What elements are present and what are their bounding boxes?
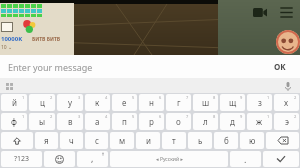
button[interactable]: ш [193, 94, 218, 111]
button[interactable]: к [85, 94, 110, 111]
staticText: ф [11, 116, 17, 127]
button[interactable]: Clipboard [3, 80, 15, 92]
staticText: ◂ Русский ▸ [156, 156, 183, 163]
button[interactable]: г [166, 94, 191, 111]
staticText: 8 [213, 114, 216, 119]
button[interactable] [263, 151, 299, 167]
staticText: я [44, 135, 49, 146]
button[interactable]: с [85, 132, 108, 149]
button[interactable]: ◂ Русский ▸ [110, 151, 228, 167]
staticText: з [258, 97, 262, 108]
button[interactable]: е [112, 94, 137, 111]
button[interactable]: Backspace [266, 132, 299, 149]
staticText: а [95, 116, 100, 127]
button[interactable]: Enter your message [0, 55, 300, 78]
staticText: к [95, 97, 100, 108]
button[interactable]: л [193, 113, 218, 130]
staticText: п [122, 116, 127, 127]
staticText: ы [39, 116, 46, 127]
button[interactable]: й [1, 94, 27, 111]
staticText: н [149, 97, 154, 108]
staticText: , [91, 152, 94, 164]
button[interactable]: з [247, 94, 272, 111]
button[interactable]: ?123 [1, 151, 42, 167]
button[interactable]: , [77, 151, 108, 167]
staticText: . [244, 153, 247, 165]
button[interactable]: в [57, 113, 83, 130]
staticText: 10 ⌄ [1, 44, 13, 51]
button[interactable]: м [110, 132, 134, 149]
staticText: м [119, 135, 126, 146]
staticText: 4 [105, 95, 108, 100]
button[interactable]: т [162, 132, 186, 149]
staticText: 6 [159, 95, 162, 100]
button[interactable]: о [166, 113, 191, 130]
staticText: г [177, 97, 181, 108]
staticText: 5 [132, 114, 135, 119]
button[interactable] [1, 22, 13, 32]
button[interactable]: Video [251, 5, 269, 19]
staticText: 2 [294, 114, 297, 119]
staticText: ю [249, 135, 256, 146]
staticText: 2 [50, 95, 53, 100]
button[interactable]: р [139, 113, 164, 130]
staticText: 1 [267, 114, 270, 119]
button[interactable]: у [57, 94, 83, 111]
staticText: ж [256, 116, 263, 127]
staticText: 8 [213, 95, 216, 100]
staticText: 1 [22, 114, 25, 119]
button[interactable]: п [112, 113, 137, 130]
staticText: х [284, 97, 289, 108]
staticText: 10000K [1, 35, 23, 43]
staticText: ш [202, 97, 210, 108]
staticText: о [176, 116, 181, 127]
staticText: и [146, 135, 151, 146]
staticText: ч [69, 135, 74, 146]
staticText: БИТВ БИТВ [32, 36, 61, 43]
button[interactable]: Voice input [282, 80, 294, 92]
staticText: 5 [132, 95, 135, 100]
staticText: 7 [186, 114, 189, 119]
button[interactable]: ы [29, 113, 55, 130]
button[interactable]: . [230, 151, 261, 167]
button[interactable]: д [220, 113, 245, 130]
staticText: ?123 [14, 154, 30, 164]
button[interactable]: б [214, 132, 238, 149]
button[interactable]: ю [240, 132, 264, 149]
button[interactable]: и [136, 132, 160, 149]
button[interactable]: ц [29, 94, 55, 111]
staticText: б [224, 135, 229, 146]
button[interactable]: щ [220, 94, 245, 111]
button[interactable]: ь [188, 132, 212, 149]
staticText: щ [229, 97, 237, 108]
button[interactable]: Shift [1, 132, 33, 149]
staticText: 3 [78, 95, 81, 100]
staticText: ь [198, 135, 203, 146]
button[interactable]: ч [60, 132, 83, 149]
button[interactable]: а [85, 113, 110, 130]
staticText: е [122, 97, 127, 108]
staticText: 2 [50, 114, 53, 119]
staticText: 1 [22, 95, 25, 100]
button[interactable]: э [274, 113, 299, 130]
button[interactable]: н [139, 94, 164, 111]
staticText: т [172, 135, 176, 146]
staticText: у [68, 97, 73, 108]
button[interactable]: я [35, 132, 58, 149]
staticText: ц [40, 97, 45, 108]
staticText: д [230, 116, 235, 127]
button[interactable]: х [274, 94, 299, 111]
staticText: 3 [78, 114, 81, 119]
staticText: 9 [240, 95, 243, 100]
button[interactable]: ж [247, 113, 272, 130]
button[interactable]: ф [1, 113, 27, 130]
button[interactable]: OK [268, 58, 292, 75]
staticText: Enter your message [8, 61, 93, 73]
staticText: э [285, 116, 289, 127]
button[interactable]: Emoji [44, 151, 75, 167]
staticText: л [203, 116, 208, 127]
staticText: 1 [267, 95, 270, 100]
staticText: 9 [240, 114, 243, 119]
button[interactable]: Menu [278, 5, 294, 19]
staticText: 2 [294, 95, 297, 100]
